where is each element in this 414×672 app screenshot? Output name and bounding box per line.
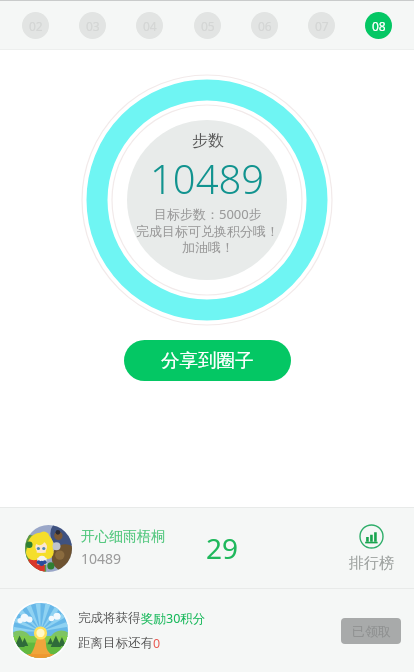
button[interactable]: 排行榜 xyxy=(339,520,404,577)
staticText: 完成将获得 xyxy=(78,610,141,626)
staticText: 10489 xyxy=(81,549,122,568)
button[interactable]: 已领取 xyxy=(341,618,401,644)
staticText: 开心细雨梧桐 xyxy=(81,528,165,546)
staticText: 加油哦！ xyxy=(182,239,234,255)
staticText: 04 xyxy=(143,18,157,34)
staticText: 08 xyxy=(372,18,386,34)
staticText: 分享到圈子 xyxy=(161,349,254,372)
button[interactable]: 分享到圈子 xyxy=(124,340,291,381)
staticText: 06 xyxy=(258,18,272,34)
button[interactable]: 05 xyxy=(194,12,221,39)
staticText: 02 xyxy=(29,18,43,34)
staticText: 05 xyxy=(201,18,215,34)
button[interactable]: 03 xyxy=(79,12,106,39)
staticText: 步数 xyxy=(192,131,224,151)
staticText: 03 xyxy=(86,18,100,34)
staticText: 完成目标可兑换积分哦！ xyxy=(136,223,279,239)
button[interactable]: 开心细雨梧桐 xyxy=(0,508,414,588)
staticText: 距离目标还有 xyxy=(78,635,153,651)
staticText: 0 xyxy=(153,635,161,652)
button[interactable]: 04 xyxy=(136,12,163,39)
staticText: 目标步数：5000步 xyxy=(154,205,262,223)
button[interactable]: 08 xyxy=(365,12,392,39)
button[interactable]: 06 xyxy=(251,12,278,39)
button[interactable]: 07 xyxy=(308,12,335,39)
staticText: 排行榜 xyxy=(349,554,394,573)
button[interactable]: 02 xyxy=(22,12,49,39)
staticText: 奖励30积分 xyxy=(141,610,206,627)
staticText: 10489 xyxy=(150,151,265,205)
staticText: 已领取 xyxy=(352,623,391,639)
staticText: 07 xyxy=(315,18,329,34)
staticText: 29 xyxy=(206,529,239,567)
